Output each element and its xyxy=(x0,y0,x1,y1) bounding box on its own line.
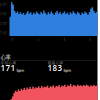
staticText: 2 xyxy=(37,38,39,41)
staticText: 6'00" xyxy=(0,22,7,26)
staticText: 171 xyxy=(0,63,15,73)
staticText: 7'00" xyxy=(0,32,7,35)
button[interactable]: 最高心率 xyxy=(47,61,94,71)
staticText: 0 xyxy=(11,38,13,41)
staticText: 心率 xyxy=(0,53,10,61)
staticText: bpm xyxy=(63,67,71,73)
staticText: 平均心率 xyxy=(0,60,16,65)
button[interactable]: 平均心率 xyxy=(0,61,47,71)
staticText: 4'00" xyxy=(0,3,7,6)
staticText: 5'00" xyxy=(0,12,7,16)
staticText: 最高心率 xyxy=(47,60,63,65)
staticText: bpm xyxy=(16,67,24,73)
staticText: 183 xyxy=(47,63,62,73)
staticText: 6 xyxy=(89,38,91,41)
staticText: 4 xyxy=(63,38,65,41)
